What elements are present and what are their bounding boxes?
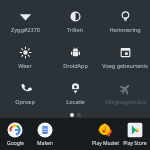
button[interactable]: Play Muziet xyxy=(90,119,120,147)
staticText: Vliegtuigmodus xyxy=(105,98,146,105)
other: DroidApp xyxy=(69,46,82,59)
button[interactable]: Zygg#2370 xyxy=(0,3,50,39)
other: Oproep xyxy=(19,82,32,95)
staticText: Zygg#2370 xyxy=(11,26,40,33)
staticText: Maken xyxy=(37,140,53,147)
button[interactable]: Weer xyxy=(0,39,50,75)
button[interactable]: DroidApp xyxy=(50,39,100,75)
staticText: Herinnering xyxy=(109,26,141,33)
button[interactable]: Voeg gebeurtenis toe xyxy=(100,39,150,75)
staticText: Google xyxy=(7,140,24,147)
other: Locatie xyxy=(69,82,82,95)
other: Herinnering xyxy=(119,10,132,23)
other: Voeg gebeurtenis toe xyxy=(119,46,132,59)
button[interactable]: Locatie xyxy=(50,75,100,111)
other: Zygg#2370 xyxy=(19,10,32,23)
button[interactable]: Maken xyxy=(30,119,60,147)
button[interactable]: Trillen xyxy=(50,3,100,39)
button[interactable]: Oproep xyxy=(0,75,50,111)
staticText: Locatie xyxy=(66,98,85,105)
other: Trillen xyxy=(69,10,82,23)
button[interactable]: Vliegtuigmodus xyxy=(100,75,150,111)
button[interactable]: Google xyxy=(0,119,30,147)
other: Vliegtuigmodus xyxy=(119,82,132,95)
staticText: Oproep xyxy=(15,98,35,105)
button[interactable]: Play Store xyxy=(120,119,150,147)
other: Weer xyxy=(19,46,32,59)
button[interactable]: Herinnering xyxy=(100,3,150,39)
staticText: DroidApp xyxy=(63,62,88,69)
staticText: Trillen xyxy=(67,26,83,33)
staticText: Play Store xyxy=(123,140,147,147)
staticText: Play Muziet xyxy=(92,140,119,147)
staticText: Weer xyxy=(18,62,32,69)
staticText: Voeg gebeurtenis toe xyxy=(101,62,149,69)
